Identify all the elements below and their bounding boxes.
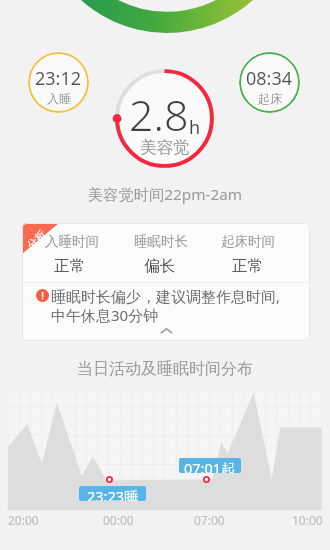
staticText: 睡眠时长偏少，建议调整作息时间, <box>51 286 281 306</box>
staticText: 美容觉 <box>140 137 190 158</box>
other: Collapse <box>160 328 173 334</box>
button[interactable]: 08:34 <box>239 52 300 113</box>
staticText: 20:00 <box>8 512 39 528</box>
staticText: 分析 <box>24 227 48 251</box>
button[interactable]: 23:12 <box>28 52 89 113</box>
staticText: 起床时间 <box>221 233 275 250</box>
staticText: h <box>189 115 201 140</box>
staticText: 中午休息30分钟 <box>51 305 159 325</box>
staticText: 23:23睡 <box>87 486 139 501</box>
staticText: 当日活动及睡眠时间分布 <box>0 359 330 379</box>
button[interactable]: 2.8 <box>115 69 214 168</box>
staticText: 07:00 <box>194 512 225 528</box>
staticText: 入睡 <box>47 91 71 106</box>
staticText: 08:34 <box>246 66 293 91</box>
button[interactable]: 07:01起 <box>179 458 241 473</box>
staticText: 2.8 <box>129 85 189 144</box>
staticText: 00:00 <box>103 512 134 528</box>
staticText: 美容觉时间22pm-2am <box>0 184 330 205</box>
button[interactable]: 分析 <box>22 223 310 341</box>
staticText: 07:01起 <box>184 458 236 473</box>
staticText: 10:00 <box>292 512 323 528</box>
staticText: 正常 <box>232 256 263 276</box>
staticText: 起床 <box>258 91 282 106</box>
staticText: 入睡时间 <box>45 233 99 250</box>
button[interactable]: 23:23睡 <box>79 486 146 501</box>
staticText: 睡眠时长 <box>134 233 188 250</box>
staticText: 23:12 <box>35 66 82 91</box>
staticText: 偏长 <box>144 256 175 276</box>
staticText: 正常 <box>54 256 85 276</box>
